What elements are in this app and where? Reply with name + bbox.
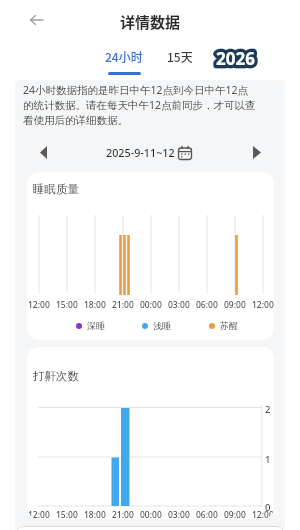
staticText: 15:00 <box>56 299 78 311</box>
staticText: 2026 <box>216 47 255 70</box>
staticText: 00:00 <box>140 299 162 311</box>
staticText: 21:00 <box>112 299 134 311</box>
button[interactable]: 24小时 <box>101 48 147 78</box>
button[interactable] <box>246 142 268 162</box>
button[interactable]: 2026 <box>214 46 256 70</box>
staticText: 2026 <box>216 47 255 70</box>
staticText: 深睡 <box>87 320 105 331</box>
staticText: 苏醒 <box>220 320 238 331</box>
staticText: 12:00 <box>28 299 50 311</box>
staticText: 打鼾次数 <box>33 369 79 383</box>
staticText: 24小时 <box>105 48 143 65</box>
staticText: 21:00 <box>112 509 134 519</box>
button[interactable]: 浅睡 <box>142 320 171 331</box>
staticText: 18:00 <box>84 509 106 519</box>
staticText: 12:00 <box>252 299 274 311</box>
staticText: 06:00 <box>196 509 218 519</box>
staticText: 12:00 <box>252 509 274 519</box>
staticText: 18:00 <box>84 299 106 311</box>
staticText: 09:00 <box>224 509 246 519</box>
button[interactable] <box>22 8 50 32</box>
staticText: 00:00 <box>140 509 162 519</box>
staticText: 03:00 <box>168 299 190 311</box>
button[interactable] <box>32 142 54 162</box>
staticText: 2 <box>265 403 271 416</box>
staticText: 1 <box>265 453 271 466</box>
staticText: 06:00 <box>196 299 218 311</box>
staticText: 15:00 <box>56 509 78 519</box>
staticText: 24小时数据指的是昨日中午12点到今日中午12点 的统计数据。请在每天中午12点… <box>23 83 256 127</box>
button[interactable]: 深睡 <box>76 320 105 331</box>
button[interactable]: 2025-9-11~12 <box>106 145 192 160</box>
staticText: 浅睡 <box>153 320 171 331</box>
staticText: 03:00 <box>168 509 190 519</box>
button[interactable]: 苏醒 <box>209 320 238 331</box>
staticText: 睡眠质量 <box>33 182 79 196</box>
button[interactable]: 15天 <box>162 48 198 70</box>
staticText: 0 <box>265 501 271 514</box>
staticText: 15天 <box>167 48 193 65</box>
staticText: 2025-9-11~12 <box>106 145 175 160</box>
staticText: 详情数据 <box>120 11 181 33</box>
staticText: 09:00 <box>224 299 246 311</box>
staticText: 12:00 <box>28 509 50 519</box>
